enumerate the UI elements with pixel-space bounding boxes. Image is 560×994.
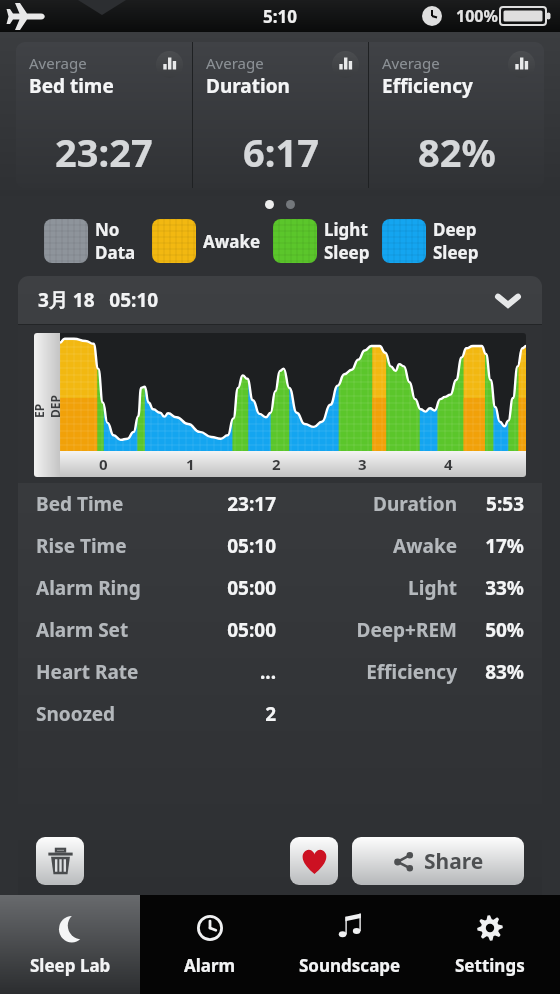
button[interactable]: Settings [420, 895, 560, 994]
staticText: Duration [206, 73, 290, 99]
button[interactable]: SLEEP DEPTH [34, 333, 526, 477]
button[interactable]: Average [193, 42, 368, 188]
staticText: Settings [455, 954, 525, 977]
staticText: Duration [276, 491, 457, 517]
button[interactable]: Light [273, 218, 370, 264]
staticText: 1 [186, 454, 195, 474]
staticText: Alarm Ring [36, 575, 164, 601]
staticText: Rise Time [36, 533, 164, 559]
staticText: 2 [272, 454, 281, 474]
staticText: 5:10 [263, 5, 297, 28]
staticText: Share [424, 847, 484, 876]
staticText: 23:27 [55, 126, 153, 178]
button[interactable]: Favorite [290, 837, 338, 885]
staticText: 17% [468, 533, 524, 559]
staticText: Snoozed [36, 701, 164, 727]
button[interactable]: No [44, 218, 136, 264]
button[interactable]: Average [369, 42, 544, 188]
button[interactable]: Delete [36, 837, 84, 885]
staticText: 33% [468, 575, 524, 601]
staticText: Sleep [324, 241, 370, 264]
staticText: Awake [203, 230, 261, 253]
staticText: 3 [358, 454, 367, 474]
staticText: 83% [468, 659, 524, 685]
staticText: Soundscape [299, 954, 401, 977]
staticText: Efficiency [276, 659, 457, 685]
staticText: Alarm [184, 954, 236, 977]
staticText: Bed Time [36, 491, 164, 517]
staticText: Deep [433, 218, 477, 241]
staticText: Heart Rate [36, 659, 164, 685]
staticText: 82% [418, 126, 496, 178]
staticText: 2 [164, 701, 276, 727]
staticText: 0 [99, 454, 108, 474]
staticText: 100% [456, 5, 498, 27]
button[interactable]: Collapse [496, 288, 520, 312]
staticText: 6:17 [243, 126, 319, 178]
button[interactable]: Sleep Lab [0, 895, 140, 994]
button[interactable]: Deep [382, 218, 479, 264]
staticText: 4 [444, 454, 453, 474]
staticText: Light [276, 575, 457, 601]
staticText: Alarm Set [36, 617, 164, 643]
staticText: 50% [468, 617, 524, 643]
staticText: 3月 18 05:10 [38, 287, 159, 313]
button[interactable]: Statistics [508, 51, 535, 78]
button[interactable]: Share [352, 837, 524, 885]
staticText: ... [164, 659, 276, 685]
staticText: Data [95, 241, 136, 264]
staticText: Bed time [29, 73, 114, 99]
button[interactable]: Statistics [156, 51, 183, 78]
staticText: 5:53 [468, 491, 524, 517]
staticText: Awake [276, 533, 457, 559]
staticText: No [95, 218, 120, 241]
staticText: 05:10 [164, 533, 276, 559]
staticText: Average [206, 53, 264, 73]
staticText: Average [29, 53, 87, 73]
button[interactable]: Statistics [332, 51, 359, 78]
button[interactable]: 3月 18 05:10 [18, 276, 542, 324]
staticText: Average [382, 53, 440, 73]
staticText: Light [324, 218, 368, 241]
staticText: 05:00 [164, 617, 276, 643]
button[interactable]: Awake [152, 219, 261, 263]
staticText: SLEEP DEPTH [34, 392, 79, 418]
staticText: 05:00 [164, 575, 276, 601]
button[interactable]: Average [16, 42, 192, 188]
button[interactable]: Alarm [140, 895, 280, 994]
staticText: Sleep Lab [30, 954, 111, 977]
staticText: Deep+REM [276, 617, 457, 643]
staticText: Efficiency [382, 73, 473, 99]
button[interactable]: Soundscape [280, 895, 420, 994]
staticText: 23:17 [164, 491, 276, 517]
staticText: Sleep [433, 241, 479, 264]
